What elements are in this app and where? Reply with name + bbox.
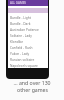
button[interactable]: Napoleon's square — [8, 63, 48, 68]
button[interactable]: Canfield - Rush — [8, 45, 48, 51]
button[interactable]: Yukon - Lady — [8, 51, 48, 57]
button[interactable]: Russian solitaire — [8, 57, 48, 63]
staticText: Solitaire - Lady — [10, 34, 32, 38]
button[interactable]: Bundle - Light — [8, 15, 48, 21]
staticText: Canfield - Rush — [10, 46, 33, 50]
staticText: ... and over 130 — [13, 79, 51, 86]
staticText: Bundle - Light — [10, 16, 31, 20]
staticText: Yukon - Lady — [10, 52, 30, 56]
staticText: Russian solitaire — [10, 58, 35, 62]
staticText: other games — [17, 86, 48, 93]
button[interactable]: Bundle - Dark — [8, 21, 48, 27]
staticText: Bundle - Dark — [10, 22, 31, 26]
staticText: Napoleon's square — [10, 64, 38, 68]
button[interactable]: Solitaire - Lady — [8, 33, 48, 39]
staticText: Australian Patience — [10, 28, 39, 32]
staticText: ALL GAMES — [10, 1, 26, 5]
staticText: Klondike — [10, 40, 23, 44]
button[interactable]: Klondike — [8, 39, 48, 45]
button[interactable]: Australian Patience — [8, 27, 48, 33]
